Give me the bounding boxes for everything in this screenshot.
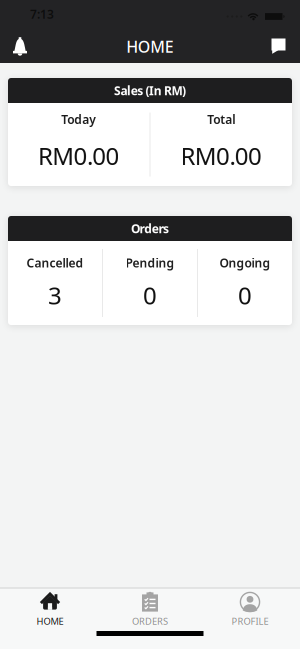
staticText: 0 [143, 279, 157, 311]
button[interactable]: ORDERS [100, 587, 200, 627]
staticText: HOME [126, 36, 174, 57]
staticText: 7:13 [30, 6, 54, 22]
button[interactable]: HOME [0, 587, 100, 627]
staticText: Orders [131, 220, 169, 236]
staticText: Ongoing [219, 255, 270, 271]
staticText: HOME [36, 615, 63, 627]
staticText: ORDERS [132, 615, 168, 627]
staticText: RM0.00 [180, 140, 262, 172]
staticText: 3 [48, 279, 62, 311]
button[interactable]: Notifications [0, 35, 27, 56]
staticText: Total [207, 111, 235, 127]
staticText: Today [61, 111, 96, 127]
staticText: PROFILE [231, 615, 268, 627]
button[interactable]: PROFILE [200, 587, 300, 627]
staticText: Sales (In RM) [114, 82, 186, 98]
staticText: Cancelled [26, 255, 83, 271]
staticText: Pending [125, 255, 174, 271]
staticText: RM0.00 [38, 140, 119, 172]
button[interactable]: Messages [271, 36, 300, 55]
staticText: 0 [238, 279, 252, 311]
